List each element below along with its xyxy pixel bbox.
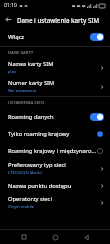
button[interactable]: Ekran główny (48, 230, 62, 244)
button[interactable]: Nazwa punktu dostępu (0, 178, 110, 193)
staticText: DANE KARTY (8, 50, 34, 56)
staticText: USTAWIENIA SIECI (8, 100, 45, 106)
button[interactable]: Wstecz (79, 230, 93, 244)
staticText: plus (8, 69, 17, 75)
staticText: Virgin mobile (8, 204, 35, 210)
staticText: Roaming danych (8, 113, 90, 121)
staticText: Dane i ustawienia karty SIM (17, 16, 100, 24)
button[interactable]: Tylko roaming krajowy (0, 125, 110, 142)
staticText: Numer karty SIM (8, 79, 55, 87)
button[interactable]: Roaming krajowy i międzynarodowy (0, 142, 110, 159)
button[interactable]: Operatorzy sieci (0, 193, 110, 212)
staticText: 01:10 (4, 2, 17, 9)
button[interactable]: Nazwa karty SIM (0, 58, 110, 77)
button[interactable]: Włącz (0, 28, 110, 46)
button[interactable]: Roaming danych (0, 108, 110, 125)
button[interactable]: Wstecz (0, 11, 17, 28)
staticText: LTE/3G/2G (Auto) (8, 170, 42, 176)
button[interactable]: Preferowany typ sieci (0, 159, 110, 178)
staticText: Włącz (8, 33, 25, 41)
staticText: Nazwa karty SIM (8, 60, 54, 68)
button[interactable]: Ostatnie (17, 230, 31, 244)
staticText: Tylko roaming krajowy (8, 130, 97, 138)
staticText: Operatorzy sieci (8, 195, 52, 203)
button[interactable]: Numer karty SIM (0, 77, 110, 96)
staticText: Preferowany typ sieci (8, 161, 66, 169)
staticText: Nazwa punktu dostępu (8, 182, 72, 190)
staticText: Nie ustawiono (8, 88, 37, 94)
staticText: Roaming krajowy i międzynarodowy (8, 147, 97, 155)
